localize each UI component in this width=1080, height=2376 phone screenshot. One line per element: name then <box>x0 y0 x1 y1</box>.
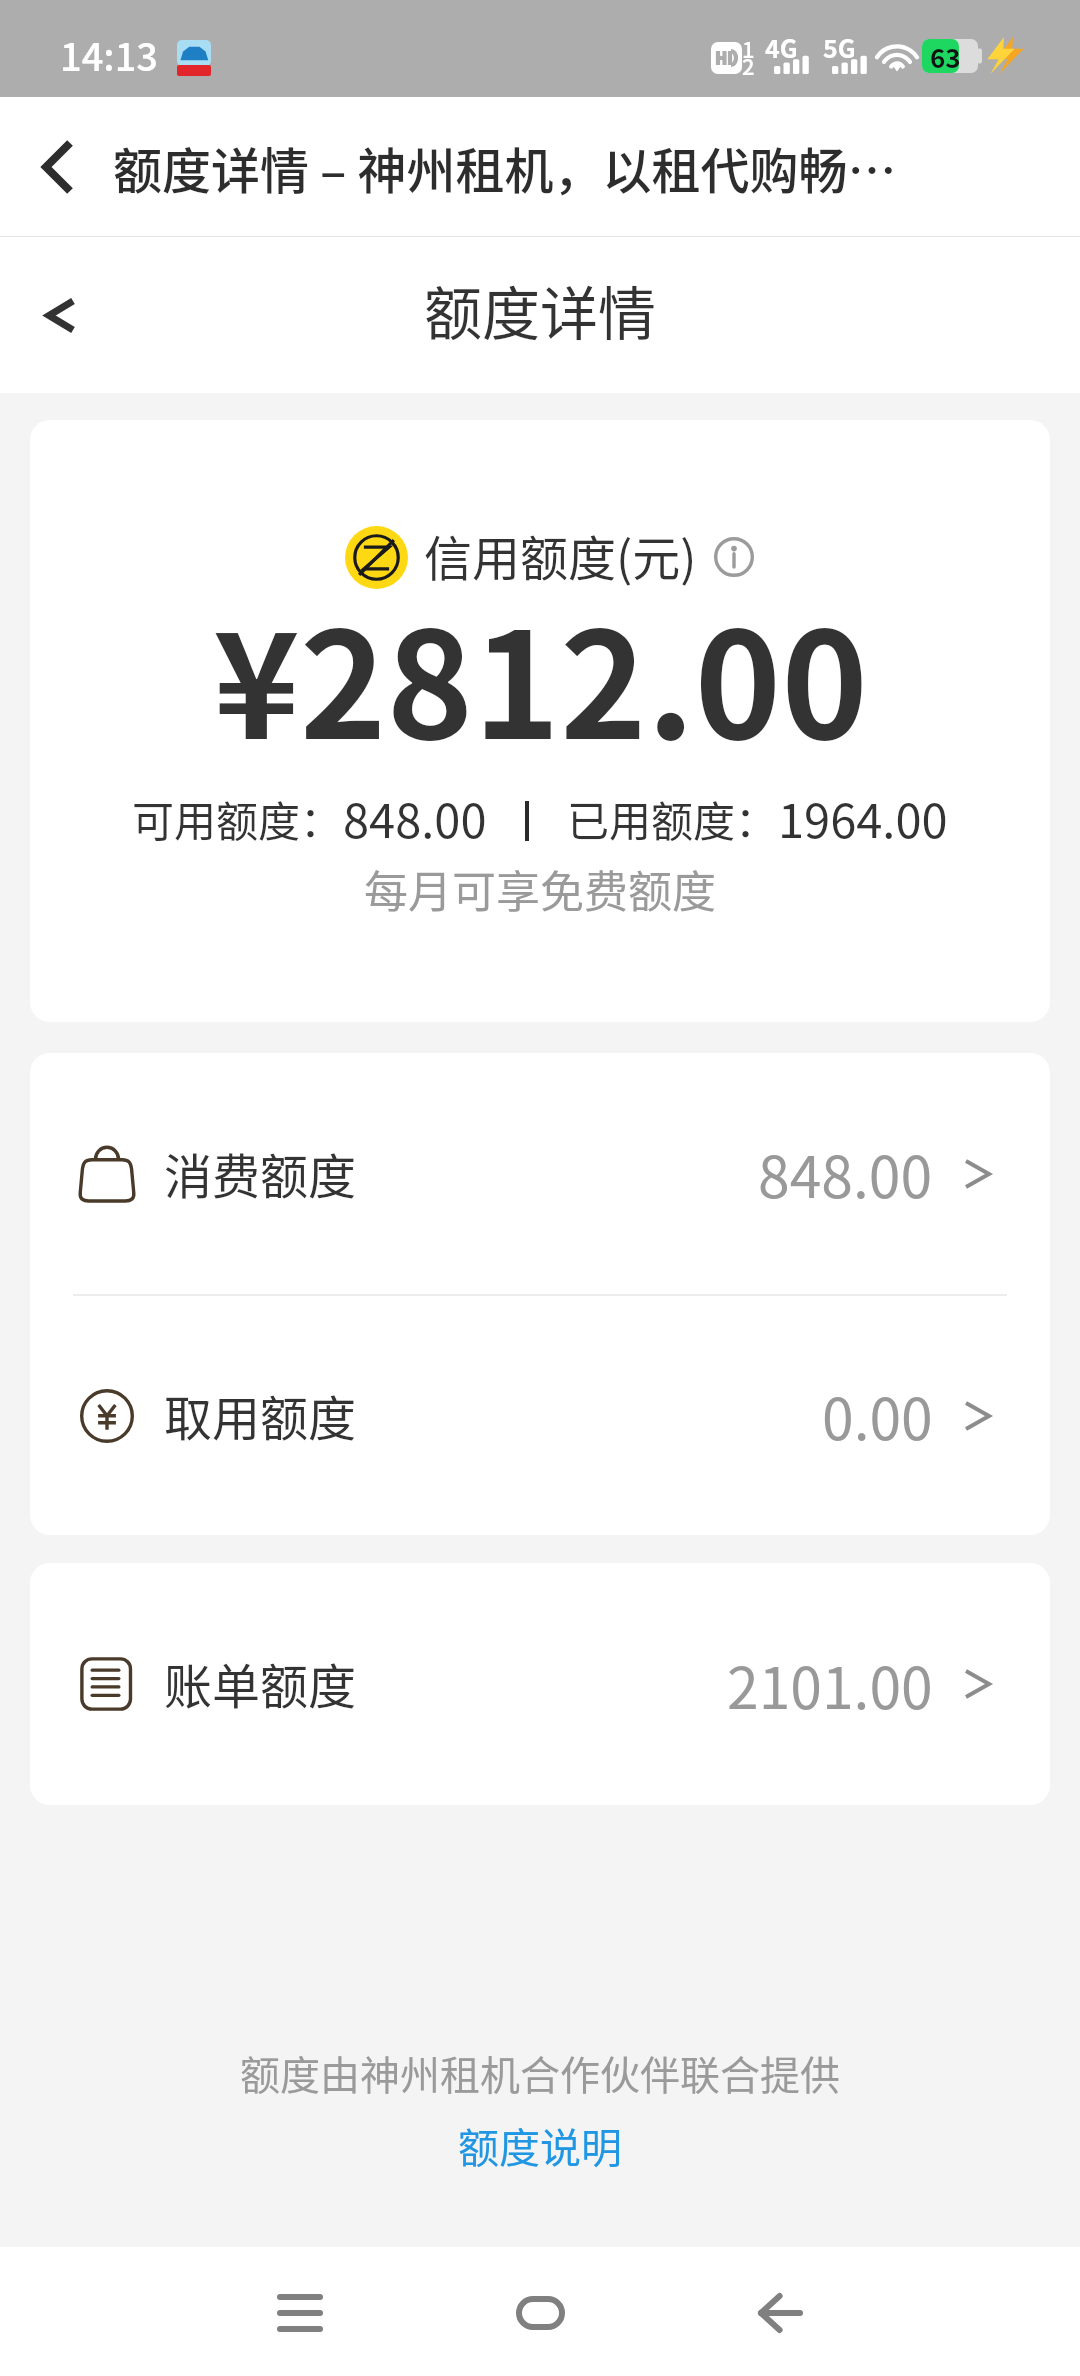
button[interactable]: 账单额度 <box>30 1563 1050 1805</box>
staticText: 14:13 <box>60 27 158 82</box>
staticText: 848.00 <box>343 783 487 851</box>
staticText: 63 <box>930 38 961 72</box>
staticText: 848.00 <box>758 1132 933 1215</box>
button[interactable]: 取用额度 <box>30 1296 1050 1535</box>
staticText: 2 <box>742 49 755 81</box>
staticText: 2101.00 <box>727 1643 933 1726</box>
button[interactable]: Credit limit info <box>714 537 754 577</box>
staticText: 额度详情 <box>424 268 657 352</box>
button[interactable]: Back <box>0 250 110 380</box>
staticText: 消费额度 <box>164 1138 357 1208</box>
staticText: 可用额度： <box>132 788 343 849</box>
button[interactable]: Recent apps <box>240 2248 360 2376</box>
button[interactable]: 额度说明 <box>458 2115 622 2174</box>
button[interactable]: Home <box>480 2248 600 2376</box>
staticText: 额度详情 – 神州租机，以租代购畅… <box>113 132 897 203</box>
staticText: 信用额度(元) <box>424 520 697 590</box>
button[interactable]: 消费额度 <box>30 1053 1050 1294</box>
staticText: 额度由神州租机合作伙伴联合提供 <box>240 2044 840 2102</box>
button[interactable]: Back <box>0 107 110 227</box>
staticText: 0.00 <box>822 1374 933 1457</box>
staticText: 5G <box>823 29 856 65</box>
button[interactable]: Back <box>720 2248 840 2376</box>
staticText: 已用额度： <box>567 788 778 849</box>
staticText: 取用额度 <box>164 1380 357 1450</box>
staticText: 4G <box>765 29 798 65</box>
staticText: 1964.00 <box>778 783 948 851</box>
staticText: 账单额度 <box>164 1648 357 1718</box>
staticText: 每月可享免费额度 <box>364 857 716 921</box>
staticText: ¥2812.00 <box>213 568 868 781</box>
staticText: 1 <box>742 32 755 64</box>
